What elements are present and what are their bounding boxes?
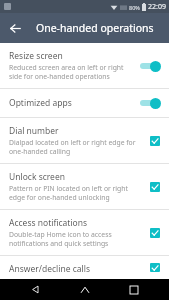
button[interactable]: Checkbox	[148, 134, 162, 148]
staticText: Unlock screen	[9, 171, 65, 183]
staticText: Answer/decline calls	[9, 263, 90, 272]
button[interactable]: Dial number	[0, 118, 169, 163]
button[interactable]: Checkbox	[148, 226, 162, 240]
staticText: Dial number	[9, 125, 59, 137]
button[interactable]: Back	[0, 13, 30, 43]
button[interactable]: Access notifications	[0, 210, 169, 255]
button[interactable]: Back	[20, 279, 50, 300]
staticText: Optimized apps	[9, 97, 72, 109]
button[interactable]: Resize screen	[0, 43, 169, 88]
button[interactable]: Optimized apps	[0, 89, 169, 117]
staticText: Access notifications	[9, 217, 88, 229]
staticText: Pattern or PIN located on left or right …	[9, 184, 142, 202]
staticText: Resize screen	[9, 50, 63, 62]
button[interactable]: Unlock screen	[0, 164, 169, 209]
staticText: Dialpad located on left or right edge fo…	[9, 138, 142, 156]
staticText: Reduced screen area on left or right sid…	[9, 63, 134, 81]
staticText: 22:09	[148, 2, 166, 12]
button[interactable]: Checkbox	[148, 263, 162, 272]
button[interactable]: Toggle	[140, 96, 162, 110]
button[interactable]: Recents	[119, 279, 149, 300]
staticText: 80%	[129, 4, 140, 11]
staticText: Double-tap Home icon to access notificat…	[9, 230, 142, 248]
button[interactable]: Toggle	[140, 59, 162, 73]
staticText: One-handed operations	[36, 21, 154, 35]
button[interactable]: Checkbox	[148, 180, 162, 194]
button[interactable]: Home	[70, 279, 100, 300]
button[interactable]: Answer/decline calls	[0, 256, 169, 279]
